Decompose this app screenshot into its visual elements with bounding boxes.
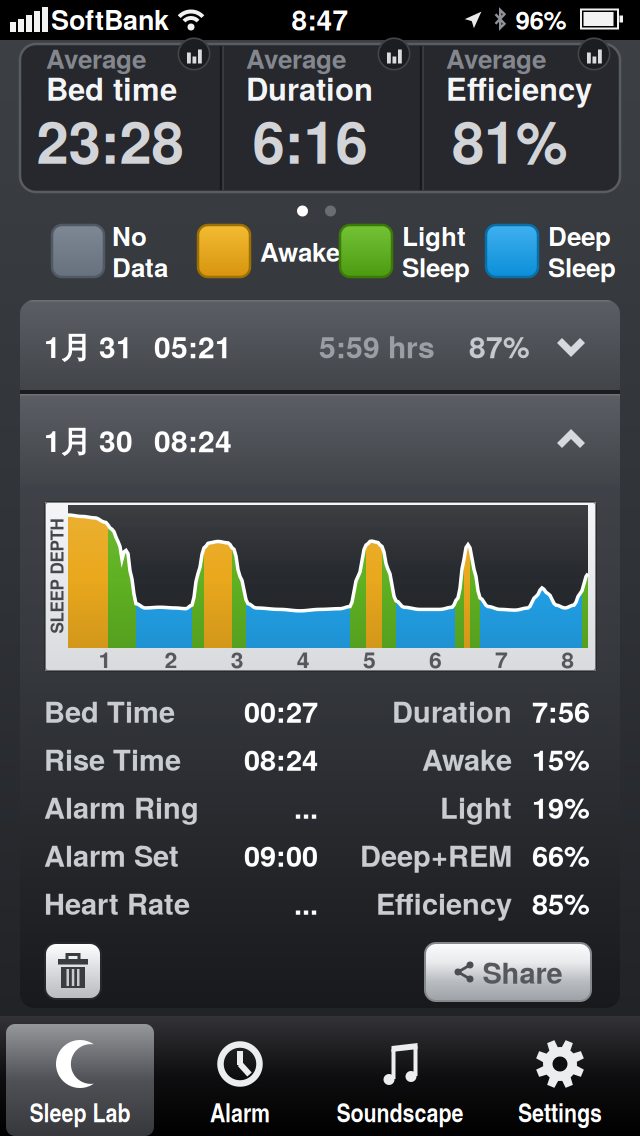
staticText: Efficiency bbox=[446, 66, 592, 110]
staticText: 5:59 hrs bbox=[319, 324, 435, 367]
staticText: 23:28 bbox=[36, 98, 183, 182]
staticText: 1 bbox=[98, 642, 111, 675]
staticText: 96% bbox=[515, 0, 566, 38]
staticText: 66% bbox=[532, 834, 590, 876]
staticText: Alarm Ring bbox=[44, 786, 199, 828]
staticText: 05:21 bbox=[154, 324, 232, 367]
staticText: Deep Sleep bbox=[548, 217, 616, 285]
staticText: Deep+REM bbox=[360, 834, 512, 876]
staticText: 7 bbox=[495, 642, 508, 675]
staticText: 08:24 bbox=[154, 418, 232, 461]
staticText: Sleep Lab bbox=[29, 1094, 130, 1130]
staticText: 2 bbox=[165, 642, 178, 675]
staticText: 1月 31 bbox=[44, 324, 133, 367]
button[interactable]: Soundscape bbox=[320, 1016, 480, 1136]
staticText: 09:00 bbox=[244, 834, 318, 876]
staticText: Heart Rate bbox=[44, 882, 190, 924]
button[interactable]: Settings bbox=[480, 1016, 640, 1136]
staticText: 6:16 bbox=[252, 98, 367, 182]
staticText: 81% bbox=[452, 98, 568, 182]
staticText: Light Sleep bbox=[402, 217, 470, 285]
staticText: Bed Time bbox=[44, 690, 175, 732]
staticText: Alarm bbox=[210, 1094, 270, 1130]
staticText: Awake bbox=[422, 738, 512, 780]
staticText: 87% bbox=[469, 324, 530, 367]
button[interactable]: Sleep Lab bbox=[0, 1016, 160, 1136]
staticText: Bed time bbox=[46, 66, 177, 110]
staticText: Average bbox=[246, 39, 346, 77]
button[interactable]: Share bbox=[424, 942, 592, 1002]
button[interactable] bbox=[44, 942, 102, 1000]
staticText: Settings bbox=[518, 1094, 602, 1130]
staticText: Soundscape bbox=[336, 1094, 463, 1130]
staticText: Share bbox=[482, 951, 562, 993]
button[interactable] bbox=[377, 37, 410, 70]
staticText: 15% bbox=[532, 738, 590, 780]
button[interactable]: 1月 31 bbox=[20, 300, 620, 390]
staticText: 4 bbox=[297, 642, 310, 675]
staticText: 5 bbox=[363, 642, 376, 675]
staticText: Alarm Set bbox=[44, 834, 179, 876]
staticText: Awake bbox=[260, 232, 340, 270]
staticText: Average bbox=[46, 39, 146, 77]
staticText: Average bbox=[446, 39, 546, 77]
staticText: Light bbox=[440, 786, 512, 828]
staticText: Duration bbox=[246, 66, 373, 110]
button[interactable] bbox=[177, 37, 210, 70]
staticText: 85% bbox=[532, 882, 590, 924]
staticText: 1月 30 bbox=[44, 418, 133, 461]
staticText: Duration bbox=[392, 690, 512, 732]
staticText: Rise Time bbox=[44, 738, 181, 780]
button[interactable]: Alarm bbox=[160, 1016, 320, 1136]
staticText: 7:56 bbox=[532, 690, 590, 732]
staticText: SLEEP DEPTH bbox=[0, 564, 114, 588]
staticText: 3 bbox=[231, 642, 244, 675]
staticText: 8 bbox=[561, 642, 574, 675]
staticText: 19% bbox=[532, 786, 590, 828]
staticText: 8:47 bbox=[291, 0, 348, 39]
staticText: 08:24 bbox=[244, 738, 318, 780]
staticText: No Data bbox=[112, 217, 168, 285]
staticText: Efficiency bbox=[376, 882, 512, 924]
button[interactable]: 1月 30 bbox=[20, 394, 620, 484]
staticText: ... bbox=[294, 786, 318, 828]
staticText: ... bbox=[294, 882, 318, 924]
staticText: 6 bbox=[429, 642, 442, 675]
staticText: 00:27 bbox=[244, 690, 318, 732]
button[interactable] bbox=[577, 37, 610, 70]
staticText: SoftBank bbox=[51, 0, 169, 38]
